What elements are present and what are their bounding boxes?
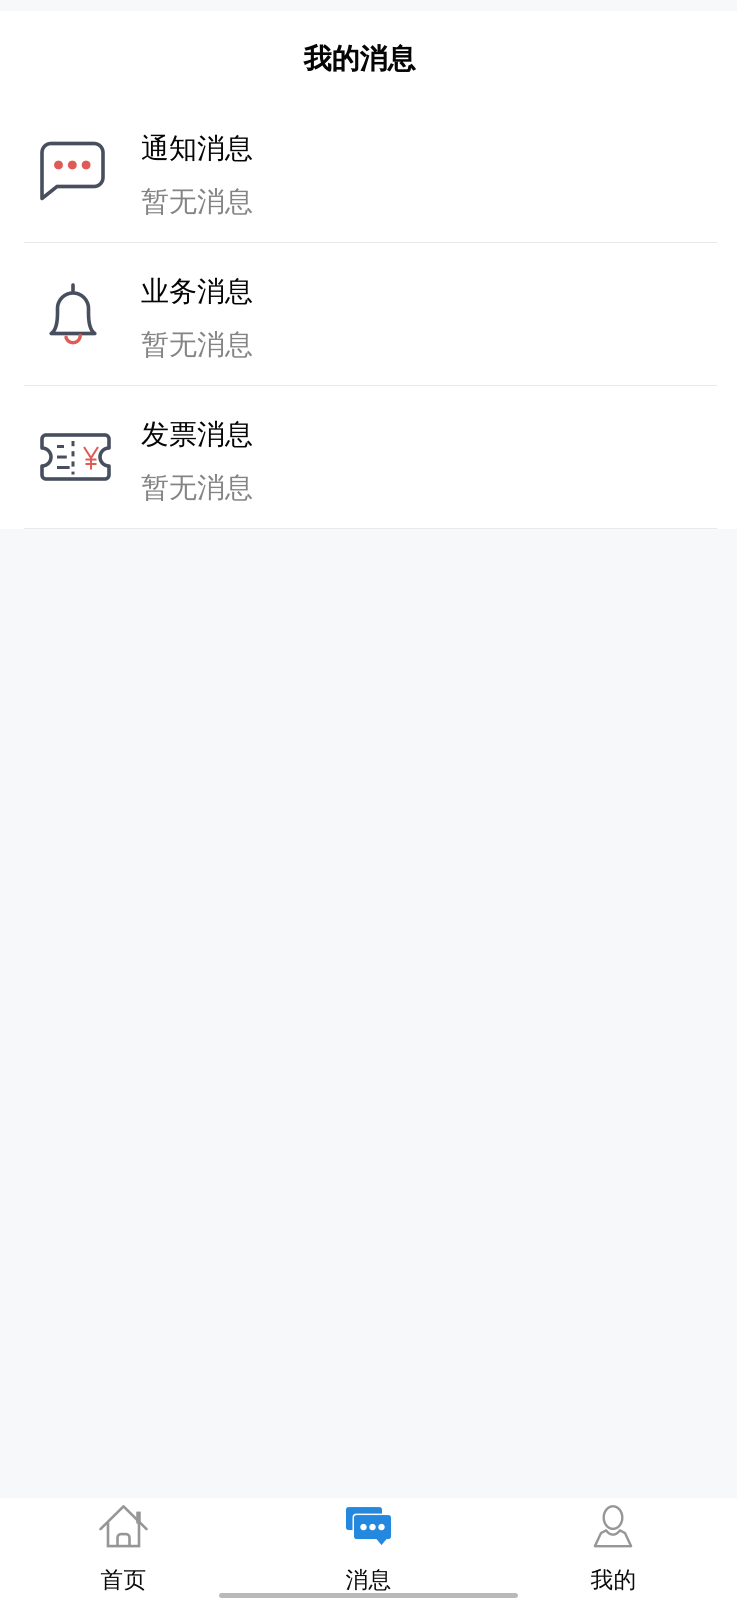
staticText: 业务消息 [141,274,253,308]
staticText: 我的消息 [303,42,415,76]
button[interactable]: 通知消息 [0,100,737,242]
button[interactable]: 业务消息 [0,243,737,385]
staticText: 我的 [590,1566,636,1594]
staticText: 消息 [345,1566,391,1594]
staticText: 暂无消息 [141,470,253,505]
button[interactable]: 发票消息 [0,386,737,528]
button[interactable]: 消息 [246,1498,491,1600]
staticText: 暂无消息 [141,327,253,362]
staticText: 暂无消息 [141,184,253,219]
staticText: 通知消息 [141,131,253,165]
button[interactable]: 我的 [491,1498,736,1600]
staticText: 首页 [100,1566,146,1594]
staticText: 发票消息 [141,417,253,451]
button[interactable]: 首页 [1,1498,246,1600]
